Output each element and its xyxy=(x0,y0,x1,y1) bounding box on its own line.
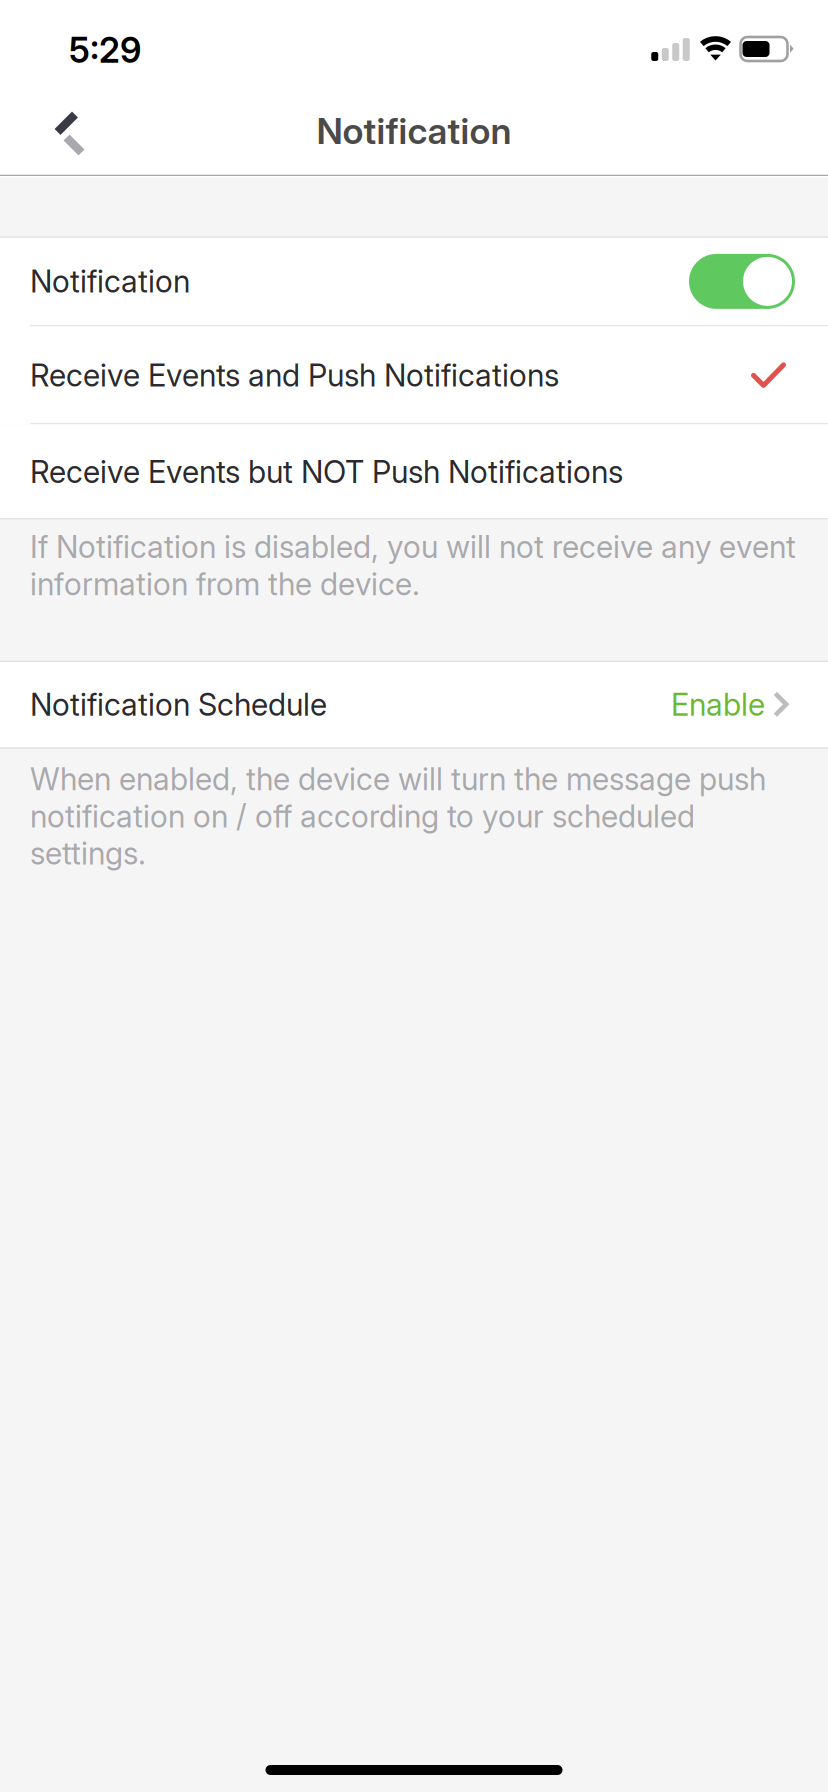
staticText: 5:29 xyxy=(69,29,141,71)
staticText: Notification xyxy=(30,263,190,300)
button[interactable]: Notification xyxy=(0,236,828,326)
staticText: When enabled, the device will turn the m… xyxy=(30,761,766,872)
staticText: Enable xyxy=(671,686,765,723)
button[interactable]: Receive Events but NOT Push Notification… xyxy=(0,424,828,519)
staticText: Receive Events but NOT Push Notification… xyxy=(30,453,623,490)
button[interactable]: Back xyxy=(0,89,112,175)
staticText: If Notification is disabled, you will no… xyxy=(30,528,796,603)
button[interactable]: Receive Events and Push Notifications xyxy=(0,326,828,424)
staticText: Notification xyxy=(316,109,511,153)
button[interactable]: Notification Schedule xyxy=(0,661,828,749)
staticText: Notification Schedule xyxy=(30,686,327,723)
staticText: Receive Events and Push Notifications xyxy=(30,357,559,394)
